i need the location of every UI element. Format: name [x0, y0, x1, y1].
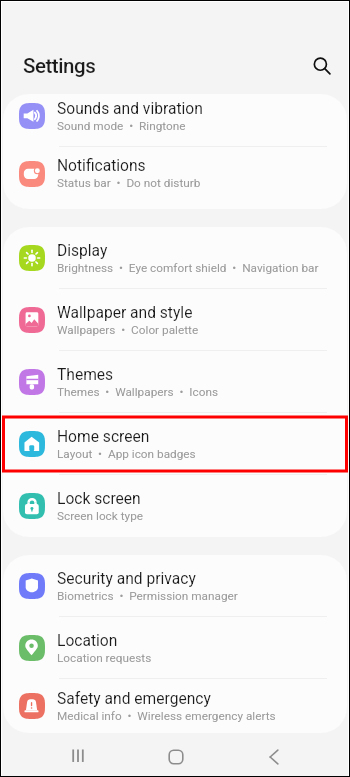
staticText: Wallpaper and style: [57, 304, 193, 322]
button[interactable]: Wallpaper and style: [3, 289, 347, 351]
button[interactable]: Safety and emergency: [3, 679, 347, 733]
button[interactable]: Home: [153, 741, 199, 773]
button[interactable]: Sounds and vibration: [3, 94, 347, 147]
button[interactable]: Lock screen: [3, 475, 347, 537]
staticText: Safety and emergency: [57, 690, 211, 708]
staticText: Notifications: [57, 157, 146, 175]
button[interactable]: Back: [251, 741, 297, 773]
staticText: Display: [57, 242, 108, 260]
button[interactable]: Themes: [3, 351, 347, 413]
staticText: Biometrics • Permission manager: [57, 589, 238, 603]
staticText: Home screen: [57, 428, 150, 446]
button[interactable]: Display: [3, 227, 347, 289]
staticText: Themes: [57, 366, 114, 384]
button[interactable]: Home screen: [3, 413, 347, 475]
staticText: Brightness • Eye comfort shield • Naviga…: [57, 261, 319, 275]
staticText: Lock screen: [57, 490, 141, 508]
staticText: Security and privacy: [57, 570, 196, 588]
button[interactable]: Recent apps: [55, 741, 101, 773]
button[interactable]: Security and privacy: [3, 555, 347, 617]
staticText: Screen lock type: [57, 509, 144, 523]
staticText: Themes • Wallpapers • Icons: [57, 385, 219, 399]
button[interactable]: Location: [3, 617, 347, 679]
staticText: Medical info • Wireless emergency alerts: [57, 709, 276, 723]
button[interactable]: Notifications: [3, 147, 347, 200]
staticText: Location: [57, 632, 118, 650]
staticText: Sound mode • Ringtone: [57, 119, 186, 133]
button[interactable]: Search: [304, 48, 340, 84]
staticText: Status bar • Do not disturb: [57, 176, 201, 190]
staticText: Wallpapers • Color palette: [57, 323, 199, 337]
staticText: Location requests: [57, 651, 152, 665]
staticText: Sounds and vibration: [57, 100, 203, 118]
staticText: Settings: [23, 54, 96, 78]
staticText: Layout • App icon badges: [57, 447, 196, 461]
